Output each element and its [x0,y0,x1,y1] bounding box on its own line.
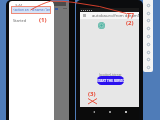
staticText: (1) [39,16,47,24]
button[interactable]: <action an [12,7,50,13]
staticText: (3) [88,90,96,98]
staticText: d:name="and [32,8,50,12]
staticText: autobauro/from dreamNavi [92,13,139,19]
staticText: <action an [13,8,29,12]
button[interactable]: Open navigation menu [82,13,87,18]
button[interactable]: Emulator control [145,25,151,31]
button[interactable]: Emulator control [145,56,151,62]
button[interactable]: Recent apps [122,108,130,116]
button[interactable]: START THE SERVICE [97,76,124,85]
button[interactable]: Emulator control [145,2,151,8]
button[interactable]: Emulator control [145,41,151,47]
button[interactable]: Back [90,108,98,116]
button[interactable]: Emulator control [145,33,151,39]
button[interactable]: Emulator control [145,49,151,55]
staticText: Started [13,18,27,23]
staticText: 3:44 [15,3,23,8]
button[interactable]: Home [106,108,114,116]
staticText: locationListener [99,73,122,77]
staticText: START THE SERVICE [97,79,124,83]
staticText: (2) [126,19,134,27]
button[interactable]: Emulator control [145,64,151,70]
button[interactable]: Emulator control [145,10,151,16]
button[interactable]: Emulator control [145,17,151,23]
